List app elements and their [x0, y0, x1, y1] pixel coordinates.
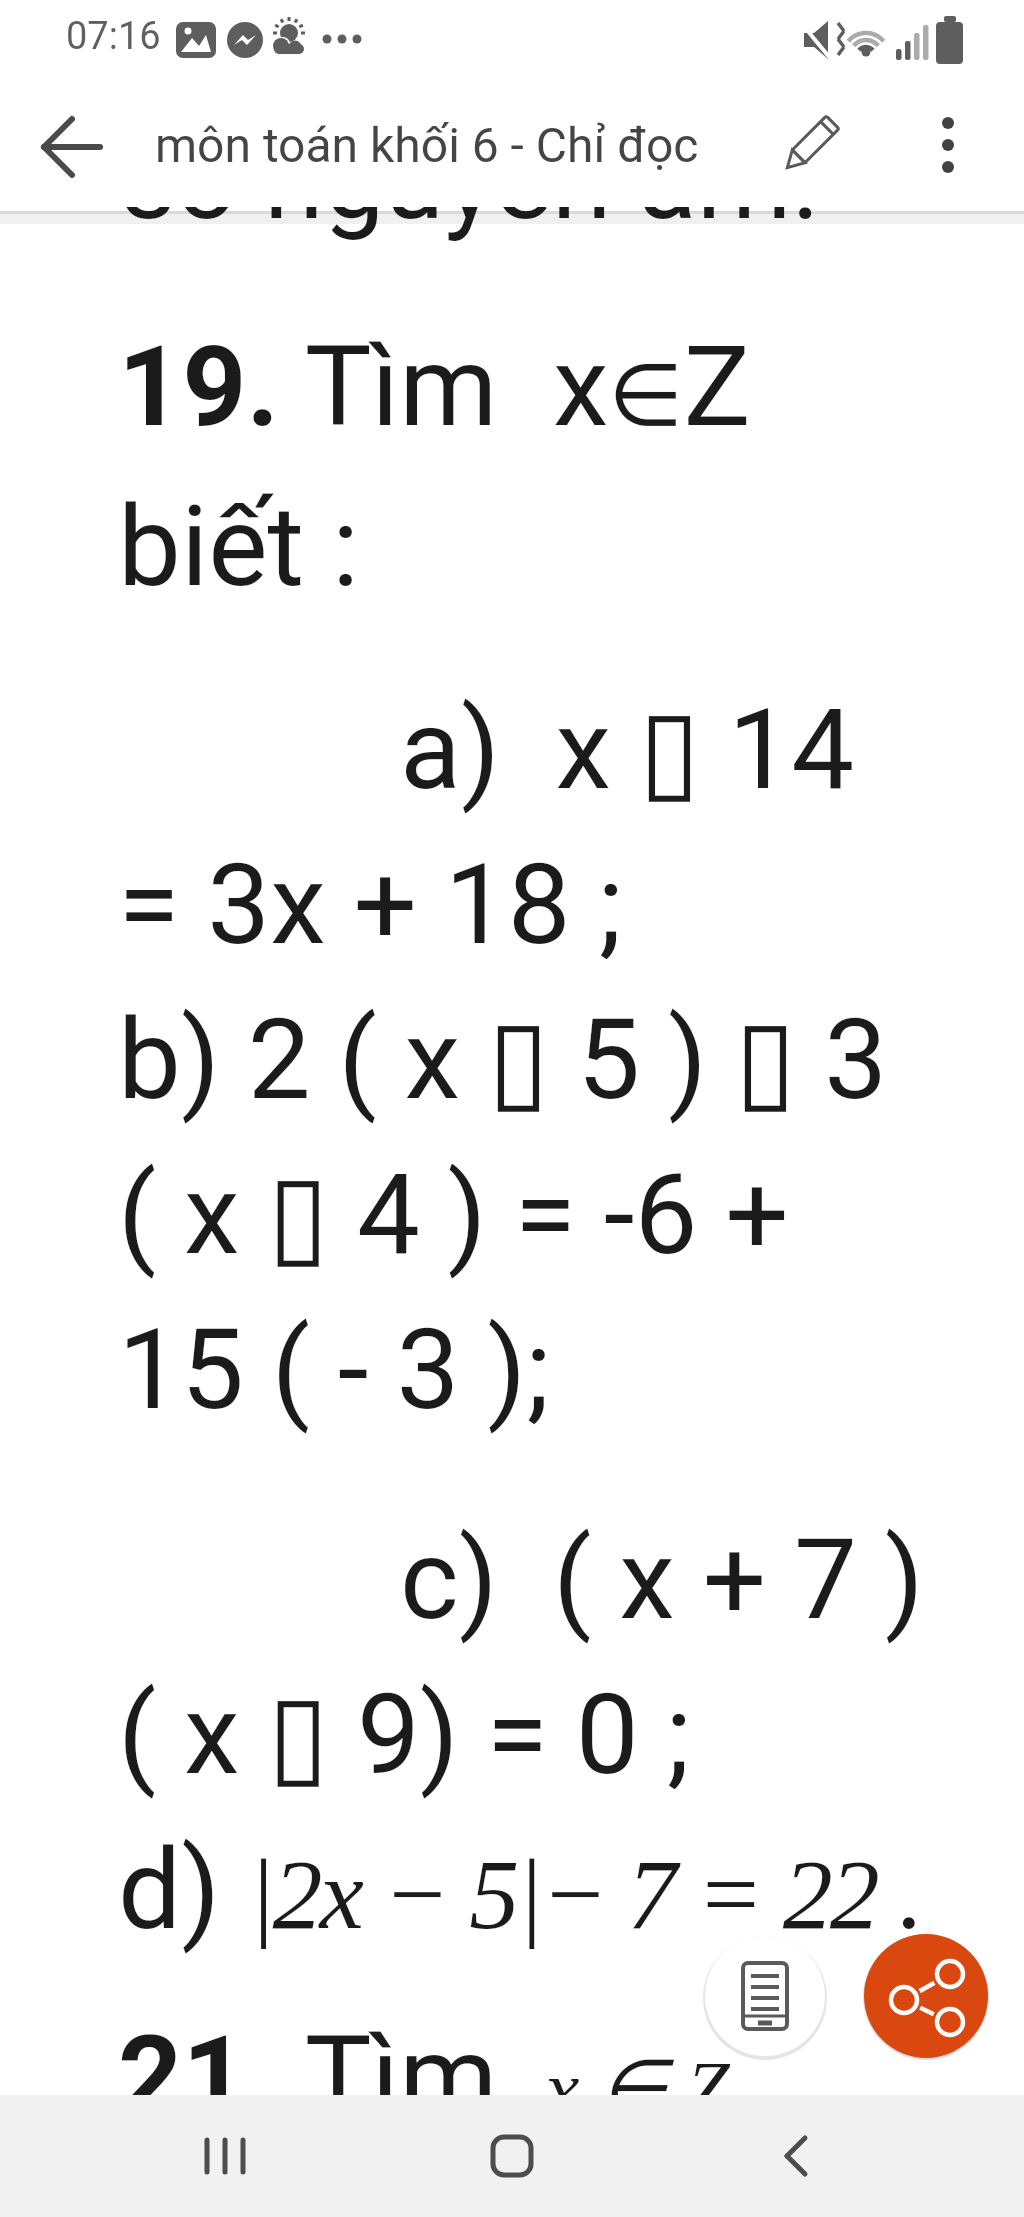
button[interactable] [770, 105, 850, 185]
staticText: 19. Tìm x∈Z [118, 321, 751, 452]
button[interactable] [462, 2120, 562, 2192]
staticText: số nguyên âm. [120, 118, 820, 245]
staticText: môn toán khối 6 - Chỉ đọc [155, 117, 699, 173]
staticText: ( x ▯ 4 ) = -6 + [118, 1149, 789, 1280]
button[interactable] [747, 2120, 847, 2192]
button[interactable] [864, 1934, 988, 2058]
staticText: 15 ( - 3 ); [118, 1304, 550, 1435]
staticText: ( x ▯ 9) = 0 ; [118, 1669, 691, 1800]
button[interactable] [915, 100, 985, 190]
button[interactable] [705, 1936, 825, 2056]
staticText: a) x ▯ 14 [400, 684, 855, 815]
staticText: d) |2x − 5|− 7 = 22 . [118, 1824, 921, 1955]
staticText: biết : [118, 481, 360, 612]
staticText: 07:16 [66, 14, 161, 59]
staticText: b) 2 ( x ▯ 5 ) ▯ 3 [118, 994, 888, 1125]
staticText: c) ( x + 7 ) [400, 1514, 924, 1645]
staticText: 21. Tìm x ∈ Z [118, 2011, 730, 2142]
button[interactable] [175, 2120, 275, 2192]
button[interactable] [20, 102, 110, 192]
staticText: = 3x + 18 ; [118, 839, 623, 970]
